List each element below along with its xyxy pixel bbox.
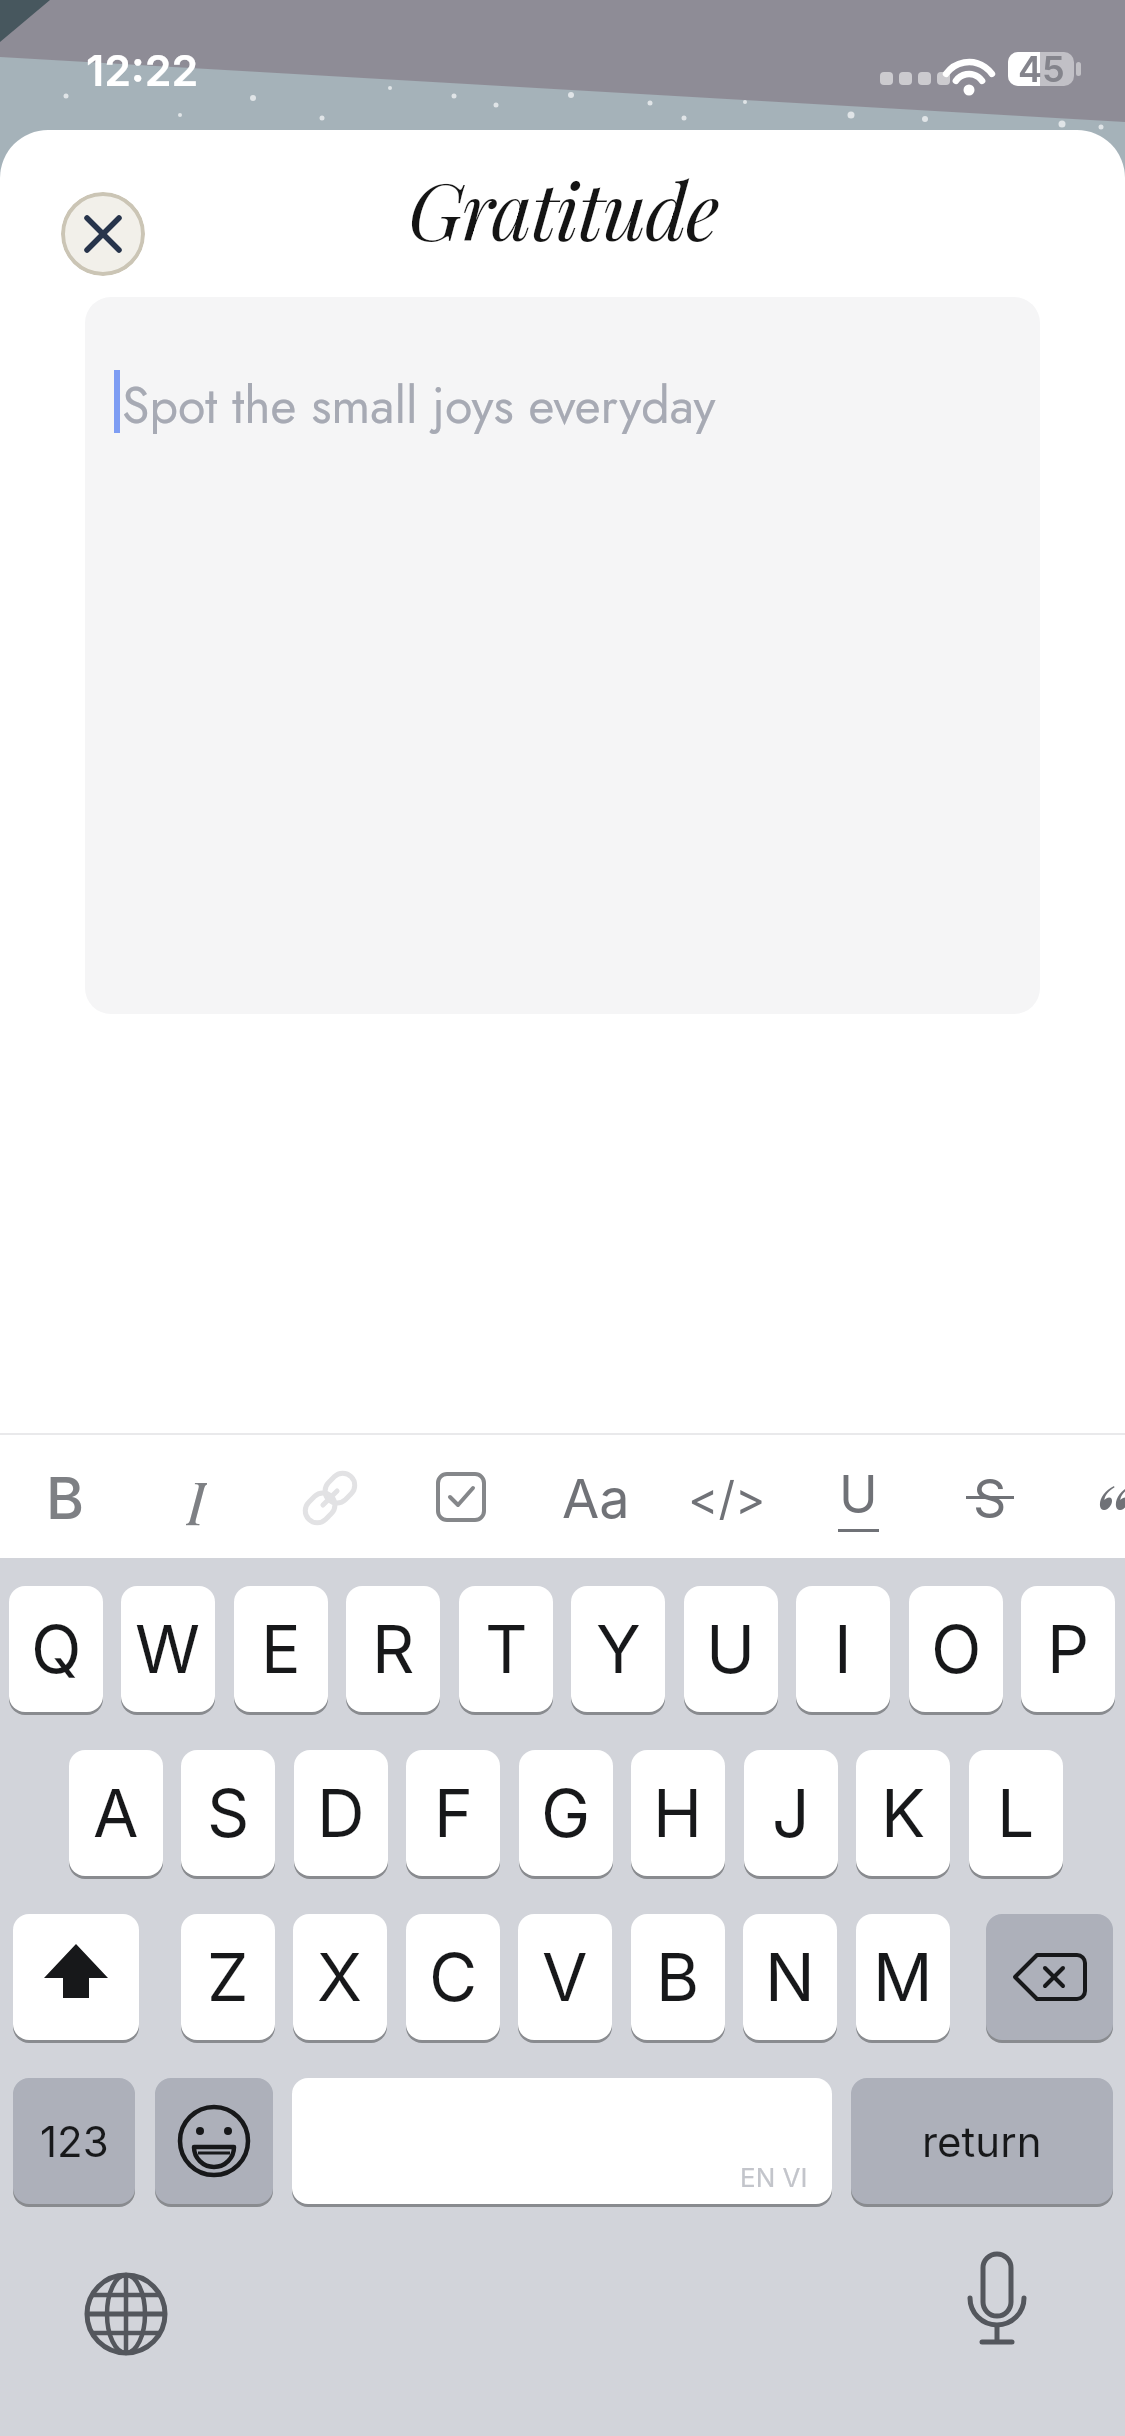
staticText: M — [873, 1937, 933, 2017]
staticText: “ — [1088, 1452, 1125, 1536]
button[interactable]: C — [406, 1914, 500, 2040]
button[interactable]: </> — [684, 1460, 770, 1536]
button[interactable]: B — [30, 1460, 100, 1536]
staticText: I — [834, 1609, 852, 1689]
button[interactable]: I — [796, 1586, 890, 1712]
staticText: B — [46, 1463, 85, 1533]
staticText: Spot the small joys everyday — [122, 369, 716, 441]
staticText: 45 — [1018, 47, 1065, 87]
staticText: EN VI — [740, 2162, 808, 2193]
button[interactable]: U — [684, 1586, 778, 1712]
button[interactable]: X — [293, 1914, 387, 2040]
button[interactable]: K — [856, 1750, 950, 1876]
staticText: Aa — [562, 1466, 630, 1531]
staticText: return — [922, 2116, 1042, 2167]
button[interactable]: EN VI — [292, 2078, 832, 2204]
staticText: N — [765, 1937, 815, 2017]
staticText: B — [656, 1937, 700, 2017]
staticText: A — [93, 1773, 139, 1853]
button[interactable]: “ — [1088, 1452, 1125, 1536]
button[interactable]: Aa — [556, 1460, 636, 1536]
button[interactable] — [83, 2271, 169, 2357]
button[interactable]: M — [856, 1914, 950, 2040]
button[interactable]: Q — [9, 1586, 103, 1712]
button[interactable]: Y — [571, 1586, 665, 1712]
staticText: 123 — [40, 2116, 109, 2167]
button[interactable] — [296, 1464, 364, 1532]
button[interactable]: U — [826, 1456, 890, 1532]
staticText: V — [542, 1937, 588, 2017]
button[interactable]: S — [958, 1460, 1022, 1536]
button[interactable]: A — [69, 1750, 163, 1876]
button[interactable] — [962, 2252, 1032, 2362]
staticText: Gratitude — [408, 157, 718, 261]
button[interactable]: L — [969, 1750, 1063, 1876]
staticText: Z — [207, 1937, 249, 2017]
staticText: K — [881, 1773, 926, 1853]
button[interactable]: 123 — [13, 2078, 135, 2204]
button[interactable]: B — [631, 1914, 725, 2040]
button[interactable]: P — [1021, 1586, 1115, 1712]
staticText: U — [706, 1609, 756, 1689]
button[interactable]: return — [851, 2078, 1113, 2204]
staticText: F — [434, 1773, 473, 1853]
staticText: W — [135, 1609, 201, 1689]
staticText: L — [997, 1773, 1035, 1853]
button[interactable]: R — [346, 1586, 440, 1712]
button[interactable]: G — [519, 1750, 613, 1876]
staticText: 12:22 — [86, 44, 199, 96]
staticText: E — [261, 1609, 301, 1689]
button[interactable] — [986, 1914, 1113, 2040]
staticText: T — [485, 1609, 528, 1689]
button[interactable]: I — [161, 1460, 231, 1536]
staticText: J — [772, 1773, 810, 1853]
staticText: S — [973, 1467, 1007, 1530]
button[interactable]: Spot the small joys everyday — [85, 297, 1040, 1014]
button[interactable] — [13, 1914, 139, 2040]
button[interactable]: J — [744, 1750, 838, 1876]
button[interactable] — [155, 2078, 273, 2204]
staticText: G — [541, 1773, 591, 1853]
staticText: H — [653, 1773, 703, 1853]
button[interactable] — [436, 1472, 488, 1524]
button[interactable]: S — [181, 1750, 275, 1876]
staticText: Y — [596, 1609, 641, 1689]
button[interactable]: Z — [181, 1914, 275, 2040]
button[interactable]: D — [294, 1750, 388, 1876]
button[interactable]: H — [631, 1750, 725, 1876]
button[interactable]: O — [909, 1586, 1003, 1712]
staticText: I — [186, 1460, 207, 1536]
staticText: </> — [688, 1470, 766, 1526]
staticText: P — [1047, 1609, 1090, 1689]
staticText: O — [931, 1609, 982, 1689]
button[interactable]: T — [459, 1586, 553, 1712]
staticText: C — [429, 1937, 478, 2017]
staticText: X — [317, 1937, 363, 2017]
button[interactable]: F — [406, 1750, 500, 1876]
button[interactable]: N — [743, 1914, 837, 2040]
staticText: U — [839, 1463, 878, 1526]
staticText: S — [207, 1773, 250, 1853]
button[interactable]: E — [234, 1586, 328, 1712]
button[interactable] — [61, 192, 145, 276]
staticText: D — [317, 1773, 365, 1853]
staticText: Q — [31, 1609, 82, 1689]
button[interactable]: V — [518, 1914, 612, 2040]
staticText: R — [372, 1609, 415, 1689]
button[interactable]: W — [121, 1586, 215, 1712]
